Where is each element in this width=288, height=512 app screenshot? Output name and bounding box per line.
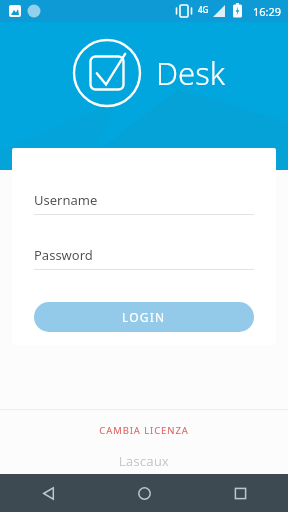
button[interactable]: Recent apps bbox=[192, 474, 288, 512]
staticText: Username bbox=[34, 191, 98, 209]
button[interactable]: Home bbox=[96, 474, 192, 512]
staticText: Password bbox=[34, 246, 93, 264]
button[interactable]: LOGIN bbox=[34, 302, 254, 332]
staticText: CAMBIA LICENZA bbox=[99, 424, 189, 437]
staticText: Desk bbox=[156, 52, 225, 94]
staticText: LOGIN bbox=[122, 309, 166, 325]
button[interactable]: Username bbox=[34, 186, 254, 214]
staticText: 16:29 bbox=[253, 4, 282, 19]
button[interactable]: Back bbox=[0, 474, 96, 512]
button[interactable]: Password bbox=[34, 241, 254, 269]
staticText: 4G bbox=[198, 4, 209, 15]
button[interactable]: CAMBIA LICENZA bbox=[85, 421, 203, 440]
staticText: Lascaux bbox=[119, 452, 169, 470]
